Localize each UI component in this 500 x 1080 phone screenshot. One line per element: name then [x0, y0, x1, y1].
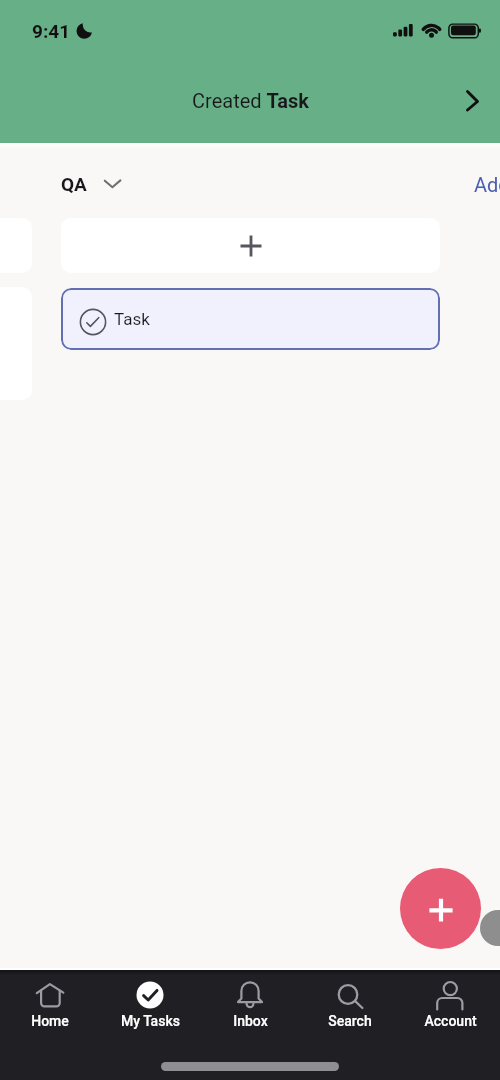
staticText: Inbox: [233, 1013, 268, 1029]
button[interactable]: Next: [458, 80, 500, 122]
button[interactable]: Create: [400, 868, 481, 949]
button[interactable]: Add: [474, 164, 500, 204]
button[interactable]: Task: [61, 288, 440, 350]
button[interactable]: Search: [300, 970, 400, 1050]
staticText: Account: [424, 1013, 477, 1029]
staticText: My Tasks: [121, 1013, 180, 1029]
staticText: Search: [328, 1013, 372, 1029]
button[interactable]: Account: [400, 970, 500, 1050]
button[interactable]: Add task: [61, 218, 440, 273]
button[interactable]: More actions: [480, 910, 500, 946]
staticText: QA: [61, 173, 87, 195]
button[interactable]: Inbox: [200, 970, 300, 1050]
staticText: Add: [474, 173, 500, 196]
staticText: Created Task: [192, 89, 309, 112]
staticText: Task: [114, 309, 150, 329]
button[interactable]: My Tasks: [100, 970, 200, 1050]
button[interactable]: Expand column: [96, 168, 128, 200]
staticText: Home: [31, 1013, 69, 1029]
staticText: 9:41: [32, 20, 71, 42]
button[interactable]: Home: [0, 970, 100, 1050]
